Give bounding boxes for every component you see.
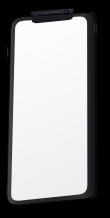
- button[interactable]: Phone device mockup with blank screen: [0, 0, 110, 218]
